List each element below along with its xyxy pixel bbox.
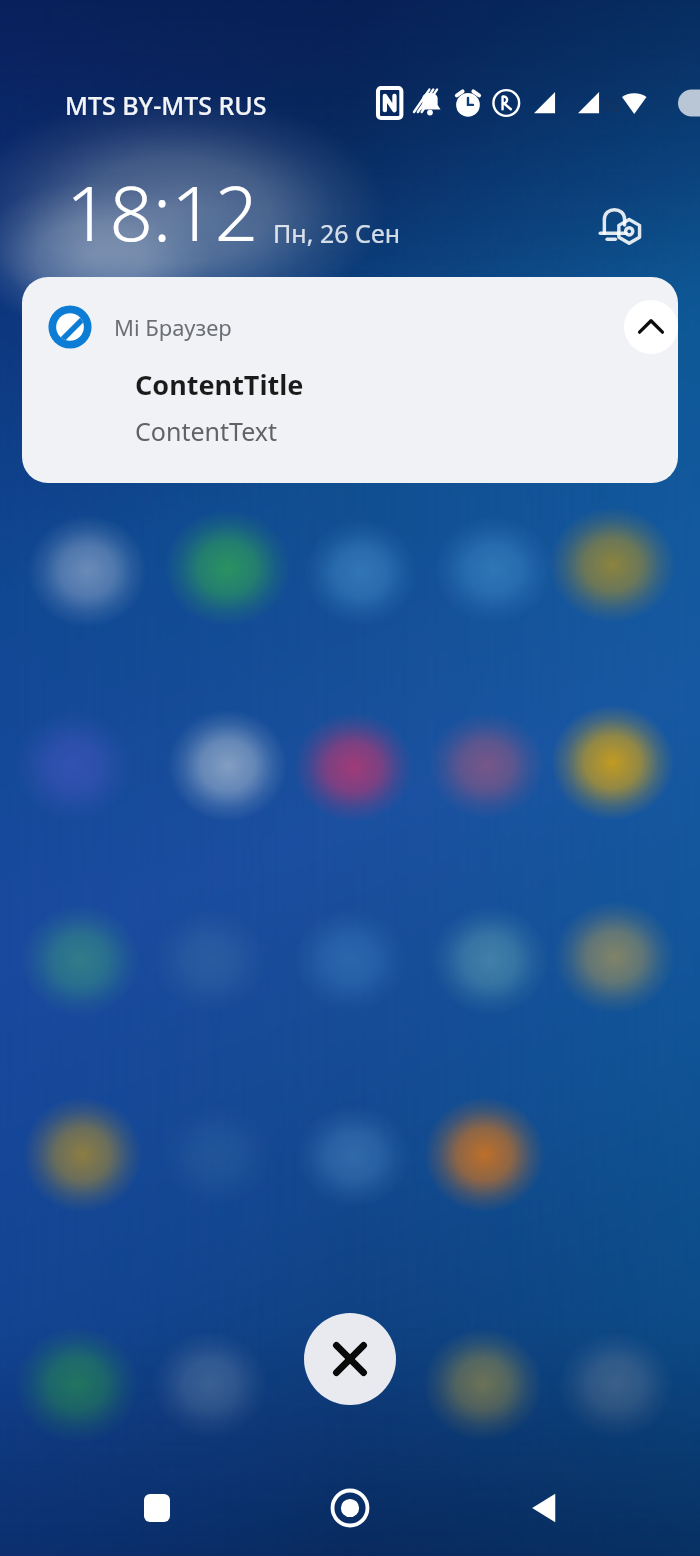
staticText: Пн, 26 Сен [273,216,401,250]
button[interactable]: Home [314,1472,386,1544]
staticText: 93 [600,93,621,118]
button[interactable]: Back [507,1472,579,1544]
staticText: 18:12 [66,160,259,264]
button[interactable]: Recent apps [121,1472,193,1544]
button[interactable]: Mi Браузер [22,277,678,483]
staticText: Mi Браузер [114,312,232,342]
button[interactable]: Notification settings [588,192,652,256]
staticText: ContentText [135,414,277,448]
button[interactable]: Collapse notification [624,300,678,354]
staticText: MTS BY-MTS RUS [65,88,267,122]
staticText: ContentTitle [135,366,304,403]
button[interactable]: Clear all notifications [304,1313,396,1405]
